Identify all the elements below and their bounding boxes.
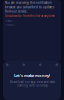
staticText: You are receiving this notification beca… bbox=[5, 1, 54, 13]
staticText: Download our app now and start earning w… bbox=[9, 80, 54, 87]
staticText: Sent with love bbox=[5, 20, 13, 22]
staticText: Let's make money! bbox=[14, 73, 50, 78]
staticText: From the team bbox=[5, 24, 14, 26]
staticText: Unsubscribe from this list at any time bbox=[5, 14, 55, 18]
